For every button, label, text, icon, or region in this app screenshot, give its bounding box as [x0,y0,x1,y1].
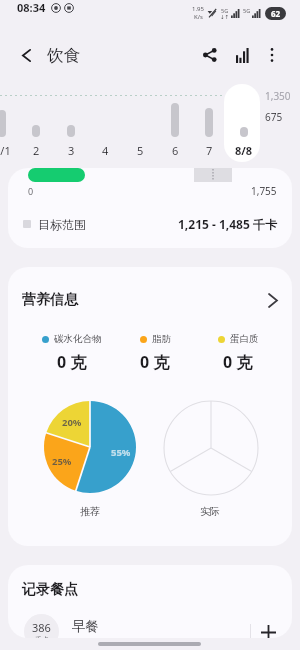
button[interactable]: Statistics [228,41,256,69]
staticText: 8/1 [0,143,11,158]
button[interactable] [8,609,292,638]
button[interactable]: 营养信息 [8,289,292,311]
staticText: ↓↑ [220,14,230,20]
staticText: 62 [271,8,281,19]
button[interactable]: 目标范围 [8,210,292,238]
staticText: 20% [62,416,82,429]
button[interactable]: Share [196,41,224,69]
staticText: 蛋白质 [230,333,259,345]
staticText: 实际 [200,505,220,518]
staticText: 0 [28,185,34,197]
staticText: 目标范围 [38,217,86,232]
staticText: 0 克 [57,351,87,373]
staticText: 386 [32,620,51,635]
button[interactable]: More options [258,41,286,69]
staticText: 早餐 [72,618,99,635]
staticText: 0 克 [223,351,253,373]
staticText: 饮食 [47,45,80,66]
staticText: 7 [206,143,213,158]
staticText: 5G [221,7,229,14]
staticText: 675 [265,110,283,124]
staticText: 8/8 [235,143,253,158]
staticText: 碳水化合物 [54,333,102,345]
staticText: K/s [194,13,203,21]
staticText: 营养信息 [22,291,78,309]
staticText: 3 [68,143,75,158]
staticText: 1,215 - 1,485 千卡 [178,216,277,232]
staticText: 4 [102,143,109,158]
staticText: 5G [243,7,251,14]
staticText: 1,350 [265,89,291,103]
staticText: 1,755 [251,184,277,198]
staticText: 千卡 [35,635,49,638]
staticText: 推荐 [80,505,100,518]
staticText: 5 [137,143,144,158]
staticText: 0 克 [140,351,170,373]
staticText: 08:34 [17,0,46,15]
staticText: 脂肪 [152,333,171,345]
staticText: 2 [33,143,40,158]
staticText: 记录餐点 [22,581,78,599]
button[interactable]: Add meal [250,614,286,638]
staticText: 1.95 [192,5,204,13]
staticText: 55% [111,446,131,459]
staticText: 25% [52,455,72,468]
button[interactable]: Back [10,39,43,72]
staticText: 6 [172,143,179,158]
button[interactable]: Selected day 8/8 [224,84,260,162]
